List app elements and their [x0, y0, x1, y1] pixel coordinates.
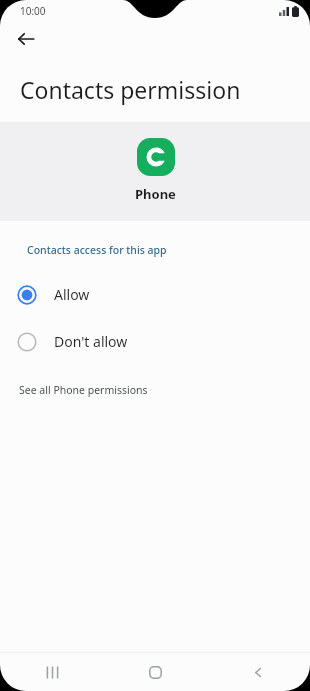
button[interactable]: Recent apps	[0, 653, 104, 691]
button[interactable]: Allow	[0, 271, 310, 318]
staticText: 10:00	[20, 4, 46, 18]
staticText: Contacts permission	[20, 74, 241, 105]
staticText: Contacts access for this app	[27, 243, 167, 257]
staticText: See all Phone permissions	[19, 383, 148, 397]
button[interactable]: Navigate up	[8, 22, 44, 56]
button[interactable]: Back	[207, 653, 310, 691]
staticText: Phone	[135, 185, 176, 203]
staticText: Allow	[54, 285, 90, 304]
button[interactable]: Home	[104, 653, 207, 691]
button[interactable]: Don't allow	[0, 318, 310, 365]
staticText: Don't allow	[54, 332, 128, 351]
button[interactable]: See all Phone permissions	[0, 376, 310, 404]
